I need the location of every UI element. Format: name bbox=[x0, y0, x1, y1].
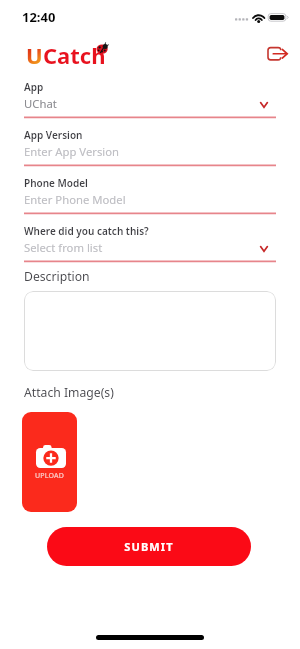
button[interactable]: Upload image bbox=[22, 412, 77, 512]
staticText: U bbox=[26, 40, 43, 70]
staticText: UChat bbox=[24, 96, 57, 111]
staticText: UPLOAD bbox=[35, 471, 64, 481]
staticText: Enter App Version bbox=[24, 144, 120, 159]
staticText: App Version bbox=[24, 128, 83, 142]
staticText: Enter Phone Model bbox=[24, 192, 126, 207]
staticText: Phone Model bbox=[24, 176, 88, 190]
button[interactable]: Phone Model bbox=[24, 176, 276, 214]
staticText: SUBMIT bbox=[124, 539, 174, 554]
staticText: Description bbox=[24, 268, 90, 285]
button[interactable]: App Version bbox=[24, 128, 276, 166]
staticText: 12:40 bbox=[22, 8, 56, 26]
staticText: Catch bbox=[43, 40, 106, 70]
staticText: Where did you catch this? bbox=[24, 224, 149, 238]
button[interactable]: App bbox=[24, 80, 276, 118]
button[interactable]: Logout bbox=[264, 43, 290, 65]
staticText: Attach Image(s) bbox=[24, 384, 114, 401]
staticText: Select from list bbox=[24, 240, 103, 255]
staticText: App bbox=[24, 80, 44, 94]
button[interactable] bbox=[24, 291, 276, 371]
button[interactable]: Where did you catch this? bbox=[24, 224, 276, 262]
button[interactable]: SUBMIT bbox=[47, 527, 251, 566]
